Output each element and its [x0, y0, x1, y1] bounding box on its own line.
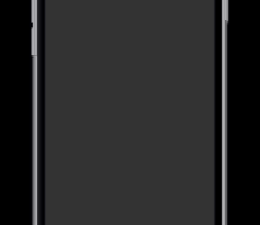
button[interactable]: Phone display [0, 0, 260, 225]
